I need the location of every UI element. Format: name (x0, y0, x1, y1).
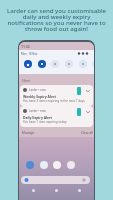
button[interactable]: Manage (21, 130, 36, 136)
staticText: Silent (22, 79, 30, 83)
button[interactable]: Search (21, 176, 90, 184)
staticText: Larder • now (29, 109, 46, 113)
button[interactable]: Larder • now (20, 106, 93, 127)
button[interactable]: App (40, 161, 48, 169)
button[interactable]: Clear all (80, 130, 94, 136)
button[interactable]: Quick setting (24, 60, 32, 68)
staticText: Manage (22, 131, 35, 135)
staticText: Larder can send you customisable daily a… (0, 6, 113, 33)
button[interactable]: App (53, 161, 61, 169)
button[interactable]: Larder • now (20, 85, 93, 106)
button[interactable]: Quick setting (92, 60, 94, 68)
staticText: You have 3 items expiring in the next 7 … (23, 99, 85, 103)
button[interactable]: Quick setting (65, 60, 73, 68)
button[interactable]: Quick setting (51, 60, 59, 68)
button[interactable]: App (26, 161, 34, 169)
staticText: Weekly Expiry Alert (23, 94, 56, 99)
staticText: 11:32 (21, 44, 30, 49)
button[interactable]: Quick setting (38, 60, 46, 68)
staticText: Clear all (81, 131, 94, 135)
staticText: Mon, 18 Nov (21, 52, 38, 56)
staticText: Larder • now (29, 88, 46, 92)
staticText: Daily Expiry Alert (23, 115, 53, 120)
button[interactable]: App (67, 161, 75, 169)
staticText: You have 1 item expiring today (23, 120, 67, 124)
button[interactable]: Quick setting (79, 60, 87, 68)
